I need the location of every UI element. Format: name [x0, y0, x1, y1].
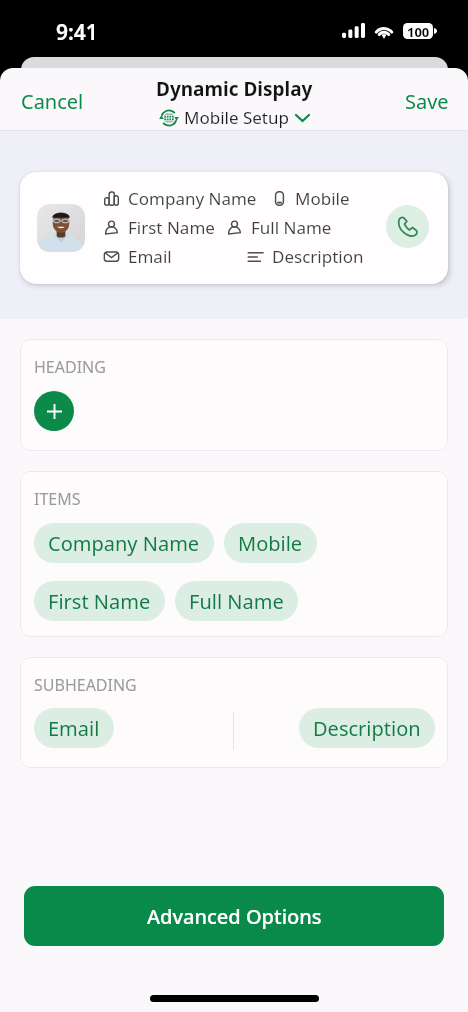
staticText: First Name [128, 216, 215, 239]
staticText: Cancel [21, 88, 84, 115]
staticText: Advanced Options [147, 903, 322, 930]
button[interactable]: Email [34, 708, 114, 748]
button[interactable]: Company Name [20, 172, 448, 284]
button[interactable]: Mobile Setup [160, 106, 309, 129]
staticText: Description [272, 245, 364, 268]
staticText: 9:41 [56, 18, 98, 47]
staticText: Company Name [128, 187, 257, 210]
staticText: Description [313, 715, 421, 742]
staticText: Mobile Setup [184, 106, 289, 129]
staticText: Full Name [189, 588, 284, 615]
staticText: Email [48, 715, 100, 742]
staticText: Company Name [48, 530, 200, 557]
staticText: Mobile [238, 530, 303, 557]
button[interactable]: First Name [34, 581, 165, 621]
button[interactable]: Save [397, 84, 457, 119]
staticText: SUBHEADING [34, 674, 137, 696]
button[interactable]: Description [299, 708, 435, 748]
staticText: First Name [48, 588, 151, 615]
button[interactable]: Advanced Options [24, 886, 444, 946]
staticText: Save [405, 88, 449, 115]
staticText: HEADING [34, 356, 106, 378]
button[interactable]: Cancel [13, 84, 92, 119]
staticText: Mobile [295, 187, 350, 210]
staticText: Dynamic Display [156, 76, 313, 102]
button[interactable]: Mobile [224, 523, 317, 563]
button[interactable]: Company Name [34, 523, 214, 563]
staticText: ITEMS [34, 488, 81, 510]
button[interactable]: Call [386, 205, 429, 248]
staticText: Full Name [251, 216, 332, 239]
staticText: Email [128, 245, 172, 268]
button[interactable]: Add [34, 391, 74, 431]
button[interactable]: Full Name [175, 581, 298, 621]
staticText: 100 [407, 23, 430, 39]
